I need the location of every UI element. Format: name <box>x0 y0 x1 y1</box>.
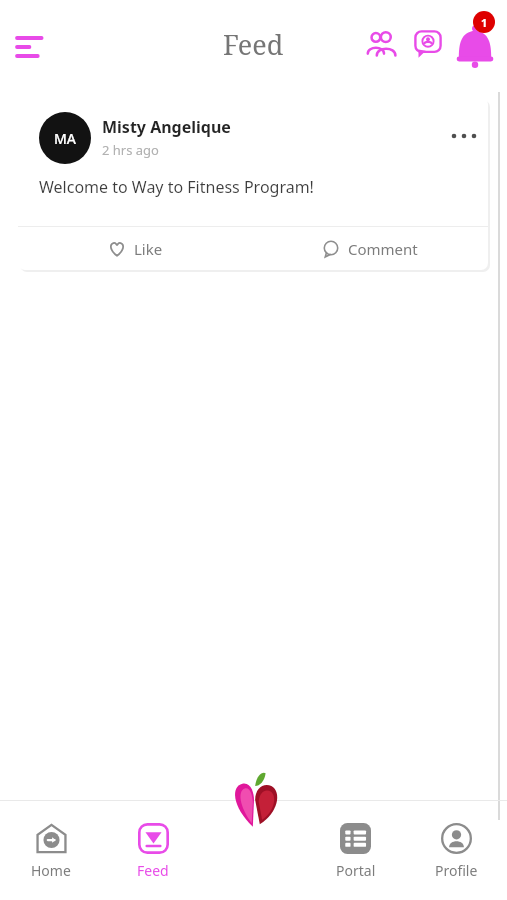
staticText: 2 hrs ago <box>102 141 159 159</box>
staticText: Feed <box>223 26 284 63</box>
staticText: Misty Angelique <box>102 116 231 138</box>
button[interactable]: Like <box>18 227 253 270</box>
staticText: Profile <box>435 861 478 880</box>
button[interactable]: Feed <box>102 801 204 900</box>
staticText: Comment <box>348 239 418 259</box>
staticText: Portal <box>336 861 376 880</box>
staticText: Feed <box>137 861 169 880</box>
button[interactable]: Messages <box>404 20 452 68</box>
button[interactable]: Notifications <box>448 14 502 68</box>
button[interactable]: Home <box>0 801 102 900</box>
staticText: Like <box>134 239 163 259</box>
staticText: Welcome to Way to Fitness Program! <box>39 176 314 198</box>
button[interactable]: Friends <box>357 20 405 68</box>
staticText: MA <box>54 129 77 148</box>
button[interactable]: Logo <box>223 769 285 831</box>
button[interactable]: Comment <box>253 227 488 270</box>
button[interactable]: MA <box>18 97 488 270</box>
button[interactable]: Portal <box>305 801 406 900</box>
staticText: 1 <box>481 15 488 30</box>
staticText: Home <box>31 861 71 880</box>
button[interactable]: More options <box>442 114 486 158</box>
button[interactable]: Profile <box>406 801 507 900</box>
button[interactable]: Menu <box>4 19 60 75</box>
